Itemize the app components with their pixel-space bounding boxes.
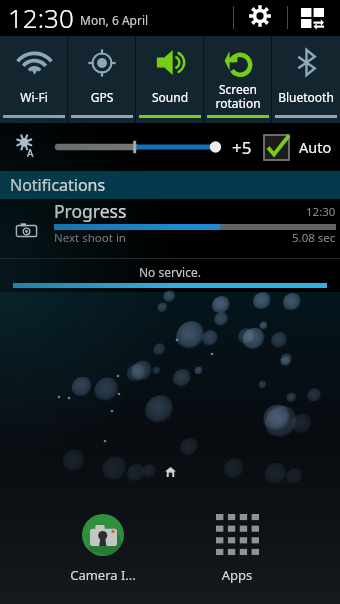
button[interactable]: Screen rotation xyxy=(204,36,272,123)
button[interactable] xyxy=(82,514,124,556)
button[interactable]: Settings xyxy=(240,0,279,34)
button[interactable]: Bluetooth xyxy=(272,36,340,123)
staticText: Notifications xyxy=(10,174,106,196)
button[interactable] xyxy=(50,136,228,158)
staticText: GPS xyxy=(68,89,136,105)
button[interactable]: Apps xyxy=(216,514,259,555)
staticText: Screen rotation xyxy=(204,81,272,112)
staticText: A xyxy=(27,146,34,160)
staticText: No service. xyxy=(139,264,201,280)
staticText: 12:30 xyxy=(306,204,336,220)
button[interactable]: GPS xyxy=(68,36,136,123)
staticText: Progress xyxy=(54,199,127,223)
staticText: Wi-Fi xyxy=(0,89,68,105)
button[interactable]: Sound xyxy=(136,36,204,123)
staticText: +5 xyxy=(232,136,252,159)
staticText: Next shoot in xyxy=(54,230,126,246)
staticText: Sound xyxy=(136,89,204,105)
staticText: Camera I... xyxy=(60,566,146,584)
staticText: Bluetooth xyxy=(272,89,340,105)
button[interactable]: Edit quick settings xyxy=(292,0,336,36)
button[interactable]: Auto xyxy=(264,131,332,163)
staticText: 12:30 xyxy=(8,0,74,35)
staticText: 5.08 sec xyxy=(292,230,336,246)
button[interactable]: Wi-Fi xyxy=(0,36,68,123)
staticText: Mon, 6 April xyxy=(80,12,149,28)
button[interactable]: Auto brightness xyxy=(11,131,39,163)
staticText: Apps xyxy=(194,566,280,584)
button[interactable]: Progress xyxy=(0,199,340,258)
staticText: Auto xyxy=(299,137,332,157)
